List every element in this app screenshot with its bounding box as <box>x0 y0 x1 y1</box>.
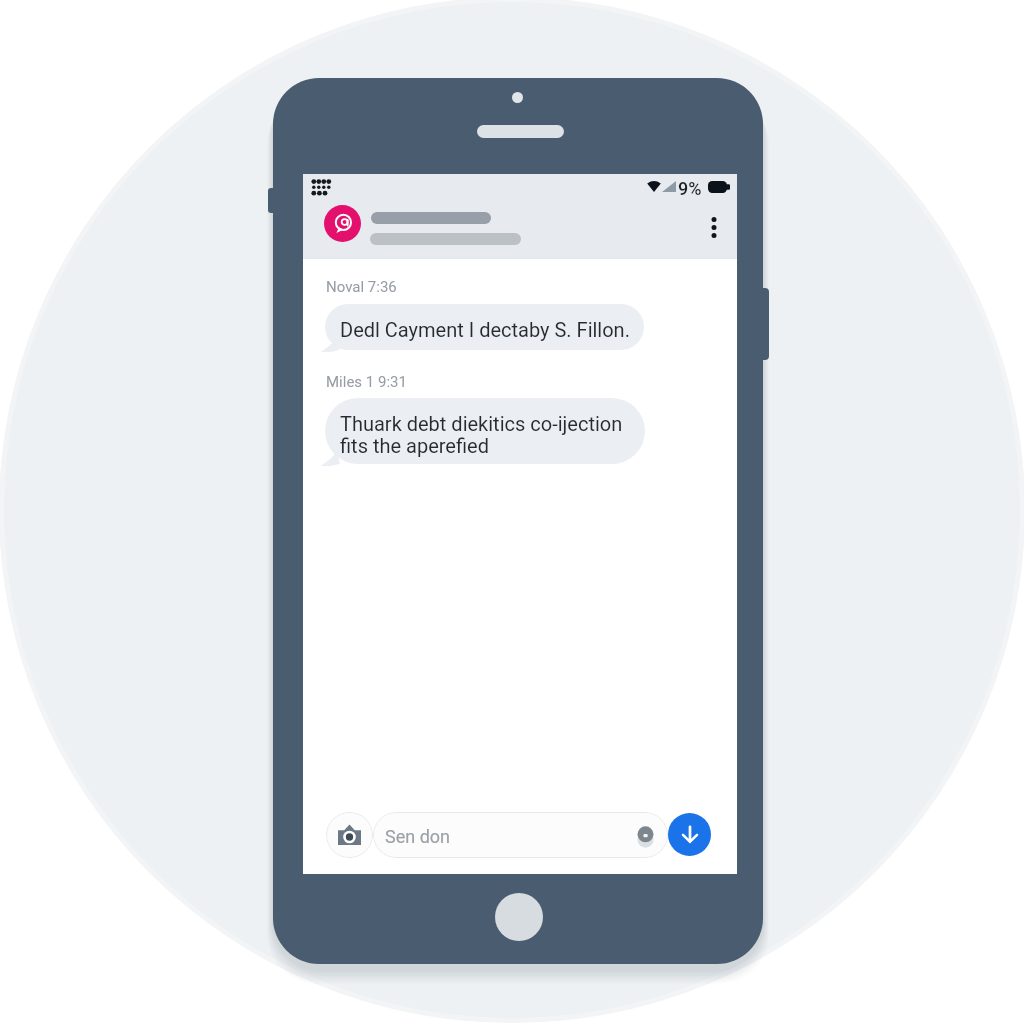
button[interactable]: Camera <box>326 812 373 858</box>
staticText: Dedl Cayment I dectaby S. Fillon. <box>340 318 630 341</box>
button[interactable] <box>325 304 644 350</box>
button[interactable]: Sen don <box>373 812 668 858</box>
staticText: Sen don <box>385 826 450 847</box>
other: Emoji <box>637 826 654 845</box>
button[interactable] <box>325 398 645 464</box>
staticText: Miles 1 9:31 <box>326 373 407 391</box>
staticText: 9% <box>678 178 702 199</box>
staticText: Thuark debt diekitics co-ijection fits t… <box>340 412 623 458</box>
staticText: Noval 7:36 <box>326 278 397 296</box>
button[interactable]: More options <box>701 205 727 249</box>
button[interactable]: Send <box>668 813 711 856</box>
button[interactable]: Profile <box>324 205 361 242</box>
